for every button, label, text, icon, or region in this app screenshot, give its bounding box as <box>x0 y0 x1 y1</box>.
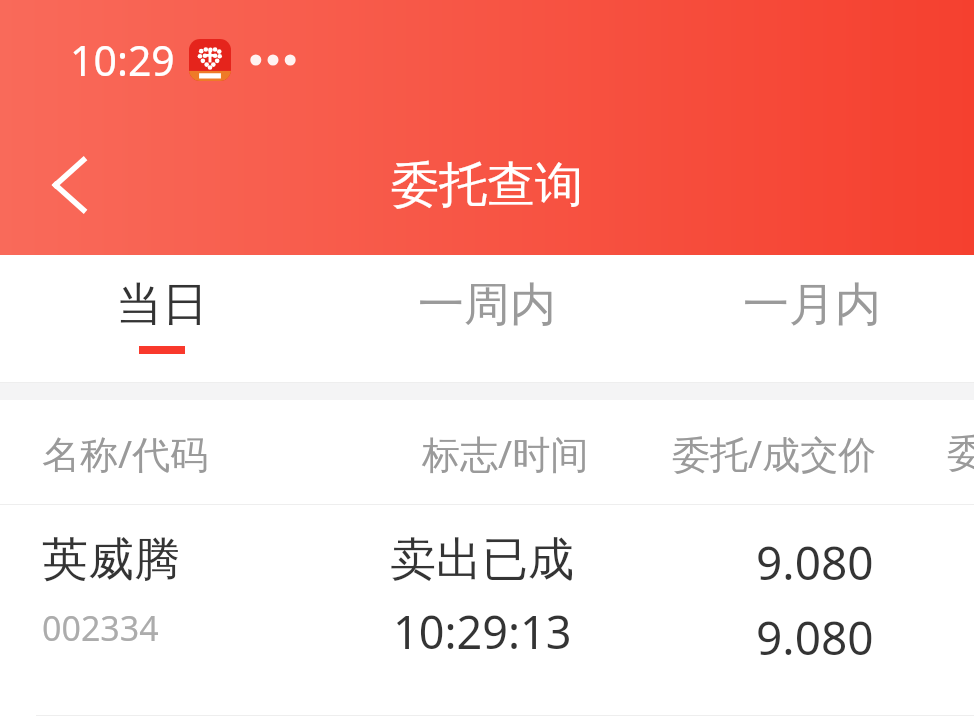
staticText: 一月内 <box>743 276 881 334</box>
staticText: 一周内 <box>418 276 556 334</box>
button[interactable]: 一月内 <box>649 255 974 383</box>
staticText: 9.080 <box>756 531 874 594</box>
staticText: 卖出已成 <box>390 531 574 589</box>
staticText: 名称/代码 <box>42 427 209 479</box>
staticText: 委托/成交价 <box>672 427 877 479</box>
staticText: 委托查询 <box>391 155 583 215</box>
staticText: 10:29 <box>70 32 175 88</box>
staticText: 002334 <box>42 605 159 651</box>
button[interactable]: 当日 <box>0 255 324 383</box>
staticText: 9.080 <box>756 606 874 669</box>
staticText: 委 <box>947 429 974 477</box>
staticText: 英威腾 <box>42 531 180 589</box>
button[interactable]: Back <box>30 147 106 223</box>
button[interactable]: 一周内 <box>324 255 649 383</box>
staticText: 标志/时间 <box>422 427 589 479</box>
staticText: 当日 <box>116 276 208 334</box>
staticText: 10:29:13 <box>393 601 572 662</box>
button[interactable]: 英威腾 <box>0 505 974 716</box>
